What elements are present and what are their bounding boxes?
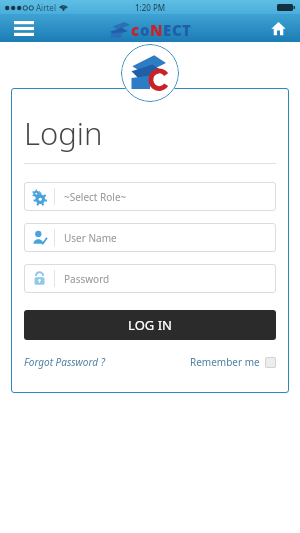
- staticText: N: [150, 20, 163, 40]
- button[interactable]: Remember me: [190, 353, 276, 371]
- button[interactable]: ~Select Role~: [24, 182, 276, 211]
- staticText: c: [131, 20, 140, 40]
- staticText: ~Select Role~: [64, 190, 127, 204]
- staticText: 1:20 PM: [135, 2, 166, 13]
- staticText: Password: [64, 272, 110, 286]
- button[interactable]: Forgot Password ?: [24, 353, 105, 371]
- staticText: T: [182, 20, 191, 40]
- button[interactable]: LOG IN: [24, 310, 276, 340]
- button[interactable]: Home: [266, 16, 290, 40]
- staticText: E: [163, 20, 172, 40]
- staticText: LOG IN: [128, 316, 172, 334]
- staticText: Remember me: [190, 355, 260, 369]
- button[interactable]: Password: [24, 264, 276, 293]
- staticText: Forgot Password ?: [24, 355, 105, 369]
- staticText: Airtel: [36, 2, 56, 13]
- staticText: User Name: [64, 231, 117, 245]
- staticText: C: [172, 20, 182, 40]
- button[interactable]: Menu: [10, 16, 38, 40]
- staticText: o: [140, 20, 150, 40]
- button[interactable]: User Name: [24, 223, 276, 252]
- staticText: Login: [24, 112, 103, 154]
